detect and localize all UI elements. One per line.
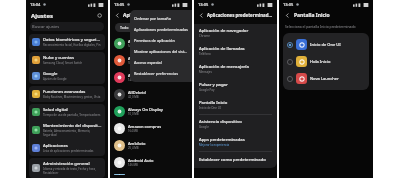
staticText: 42,0 MB <box>128 95 139 99</box>
staticText: Samsung Cloud, Smart Switch <box>43 61 83 65</box>
staticText: Aplicación de llamadas <box>199 46 245 52</box>
button[interactable]: Salud digital <box>29 104 105 120</box>
staticText: 146 MB <box>128 163 138 167</box>
staticText: Selecciona el pantalla Inicio predetermi… <box>285 24 356 29</box>
staticText: Asistencia dispositivo <box>199 119 242 125</box>
button[interactable]: Mostrar aplicaciones del sistema <box>130 46 192 57</box>
button[interactable]: Funciones avanzadas <box>29 86 105 102</box>
button[interactable]: Airbnb <box>110 69 192 86</box>
staticText: Nube y cuentas <box>43 55 75 61</box>
staticText: Chrome <box>199 34 210 38</box>
button[interactable]: Back <box>198 12 205 19</box>
staticText: Lista de aplicaciones predeterminadas <box>43 149 94 153</box>
other: Back <box>198 12 205 19</box>
button[interactable]: Google <box>29 68 105 84</box>
button[interactable]: Mantenimiento del dispositivo <box>29 120 105 140</box>
staticText: Inicio de One UI <box>199 106 221 110</box>
staticText: Amazon compras <box>128 124 162 129</box>
button[interactable]: Pantalla Inicio <box>194 96 277 114</box>
staticText: Aplicaciones predeterminadas <box>207 12 273 18</box>
staticText: Buscar ajustes <box>30 24 60 29</box>
button[interactable]: Nube y cuentas <box>29 52 105 68</box>
staticText: Ambiloto <box>128 141 146 146</box>
staticText: 25,4 MB <box>128 146 139 150</box>
staticText: 13:05 <box>198 2 209 7</box>
staticText: Google <box>199 125 209 129</box>
button[interactable]: Ambiloto <box>110 137 192 154</box>
staticText: Restablecer preferencias <box>134 71 178 76</box>
button[interactable]: Establecer como predeterminado <box>194 152 277 168</box>
button[interactable]: Aplicación de mensajería <box>194 60 277 78</box>
staticText: 148 MB <box>128 78 138 82</box>
button[interactable]: Aplicación de llamadas <box>194 42 277 60</box>
staticText: Aplicación de mensajería <box>199 64 249 70</box>
button[interactable]: Ordenar por tamaño <box>130 13 192 24</box>
button[interactable]: Nova Launcher <box>283 70 369 87</box>
staticText: Pantalla Inicio <box>199 100 228 106</box>
staticText: Mantenimiento del dispositivo <box>43 123 102 129</box>
staticText: Reconocimiento facial, Huellas digitales… <box>43 43 101 47</box>
button[interactable]: Administración general <box>29 158 105 178</box>
staticText: Permisos de aplicación <box>134 38 175 43</box>
staticText: 13:05 <box>283 2 294 7</box>
button[interactable]: AdGuard <box>110 35 192 52</box>
button[interactable]: Aplicación de navegador <box>194 24 277 42</box>
button[interactable]: Andro <box>110 171 192 178</box>
staticText: Google Pay <box>199 88 215 92</box>
button[interactable]: Asistencia dispositivo <box>194 115 277 133</box>
staticText: AdGuard <box>128 39 145 44</box>
staticText: Mostrar aplicaciones del sistema <box>134 49 188 54</box>
staticText: 13:04 <box>30 2 41 7</box>
button[interactable]: Back <box>284 12 291 19</box>
staticText: Todo ▾ <box>120 25 132 30</box>
staticText: Aplicación de navegador <box>199 28 249 34</box>
staticText: Ajustes <box>31 12 54 20</box>
button[interactable]: Back <box>114 12 121 19</box>
button[interactable]: Acceso especial <box>130 57 192 68</box>
staticText: Funciones avanzadas <box>43 89 86 95</box>
staticText: Inicio de One UI <box>310 42 341 47</box>
staticText: Google <box>43 71 58 77</box>
button[interactable]: Inicio de One UI <box>283 36 369 53</box>
staticText: Aplicaciones predeterminadas <box>134 27 188 32</box>
button[interactable]: Pulsar y pagar <box>194 78 277 96</box>
button[interactable]: Search <box>97 13 103 19</box>
staticText: 54,7 MB <box>128 44 139 48</box>
staticText: Acceso especial <box>134 60 162 65</box>
other: Back <box>114 12 121 19</box>
staticText: Pantalla Inicio <box>294 12 330 19</box>
button[interactable]: Amazon compras <box>110 120 192 137</box>
other: Back <box>284 12 291 19</box>
button[interactable]: Permisos de aplicación <box>130 35 192 46</box>
staticText: Idioma y entrada de texto, Fecha y hora,… <box>43 167 102 175</box>
staticText: 13:05 <box>114 2 125 7</box>
button[interactable]: Buscar ajustes <box>30 22 104 31</box>
button[interactable]: Aplicaciones <box>29 140 105 156</box>
button[interactable]: Datos biométricos y seguridad <box>29 34 105 50</box>
staticText: Administración general <box>43 161 90 167</box>
staticText: Pulsar y pagar <box>199 82 228 88</box>
staticText: AllDebrid <box>128 90 146 95</box>
button[interactable]: Aplicaciones predeterminadas <box>130 24 192 35</box>
staticText: Mensajes <box>199 70 212 74</box>
staticText: Aplicaciones <box>43 143 68 149</box>
staticText: Hola Inicio <box>310 59 331 64</box>
staticText: Apps predeterminadas <box>199 137 245 143</box>
staticText: Establecer como predeterminado <box>199 157 266 163</box>
button[interactable]: Todo ▾ <box>115 23 137 32</box>
button[interactable]: Hola Inicio <box>283 53 369 70</box>
button[interactable]: Always On Display <box>110 103 192 120</box>
button[interactable]: Restablecer preferencias <box>130 68 192 79</box>
button[interactable]: Apps predeterminadas <box>194 133 277 151</box>
button[interactable]: AllDebrid <box>110 86 192 103</box>
button[interactable]: Android Auto <box>110 154 192 171</box>
staticText: Batería, Almacenamiento, Memoria, Seguri… <box>43 129 102 137</box>
staticText: Tiempo de uso de pantalla, Temporizadore… <box>43 113 101 117</box>
staticText: 10,0 MB <box>128 112 139 116</box>
button[interactable]: AliExpress <box>110 52 192 69</box>
staticText: Bixby Routines, Movimientos y gestos, Vi… <box>43 95 101 99</box>
staticText: Salud digital <box>43 107 68 113</box>
staticText: Aplicaciones <box>123 12 155 19</box>
staticText: Datos biométricos y seguridad <box>43 37 102 43</box>
